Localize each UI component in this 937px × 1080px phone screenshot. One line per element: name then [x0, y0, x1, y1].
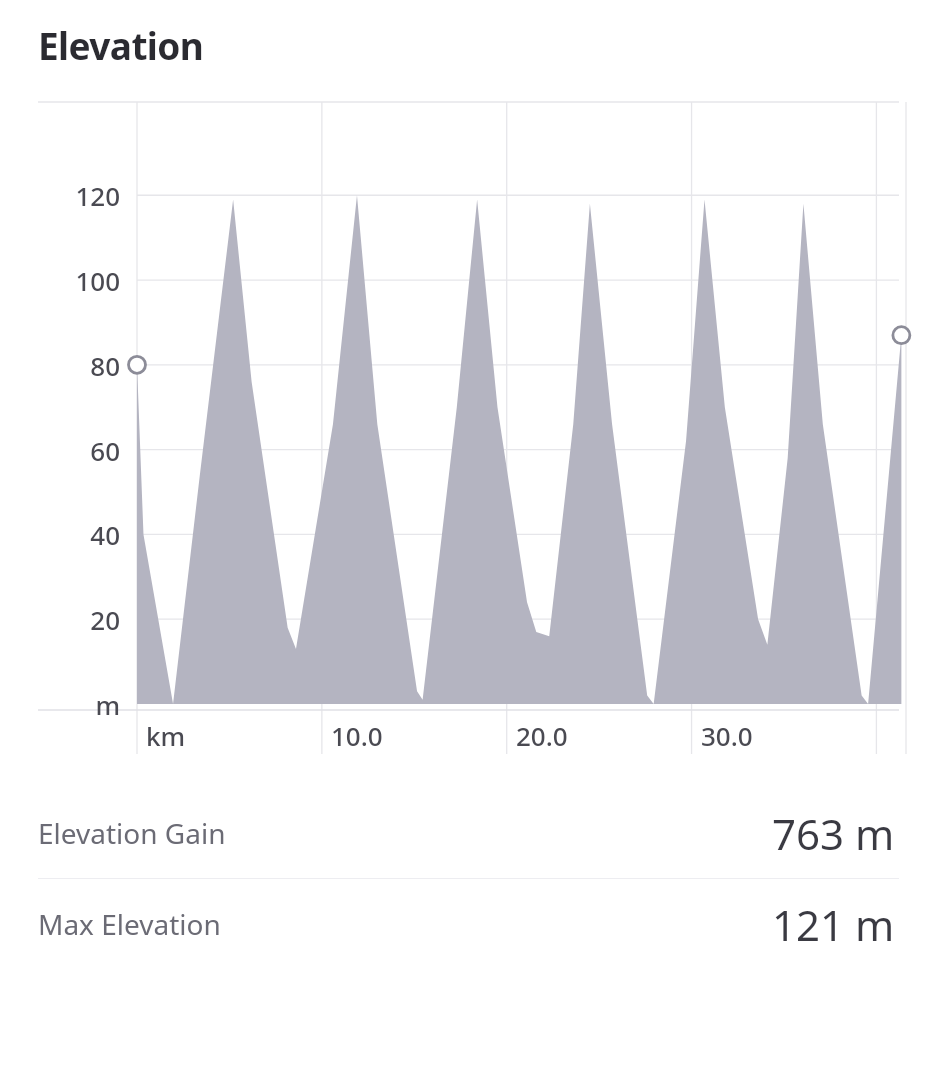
staticText: 20 [52, 602, 120, 637]
staticText: Elevation [38, 20, 204, 70]
staticText: km [146, 718, 186, 753]
staticText: 100 [52, 263, 120, 298]
staticText: m [52, 687, 120, 722]
button[interactable]: Max Elevation [0, 879, 937, 969]
staticText: 20.0 [516, 718, 568, 753]
staticText: 60 [52, 433, 120, 468]
staticText: Elevation Gain [38, 814, 226, 852]
staticText: Max Elevation [38, 905, 221, 943]
staticText: 40 [52, 517, 120, 552]
button[interactable]: Elevation Gain [0, 788, 937, 878]
staticText: 763 m [772, 805, 895, 862]
staticText: 10.0 [331, 718, 383, 753]
staticText: 120 [52, 178, 120, 213]
staticText: 121 m [772, 896, 895, 953]
staticText: 80 [52, 348, 120, 383]
staticText: 30.0 [701, 718, 753, 753]
